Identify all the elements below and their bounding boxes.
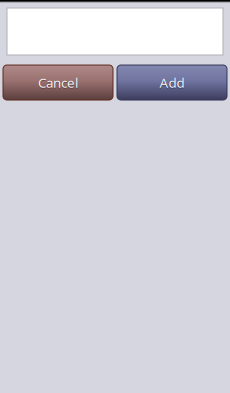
button[interactable]: Add <box>117 65 227 100</box>
staticText: Add <box>159 74 184 91</box>
staticText: Cancel <box>38 75 78 92</box>
button[interactable]: Cancel <box>3 65 113 100</box>
staticText: Cancel <box>38 74 78 91</box>
staticText: Add <box>159 75 184 92</box>
